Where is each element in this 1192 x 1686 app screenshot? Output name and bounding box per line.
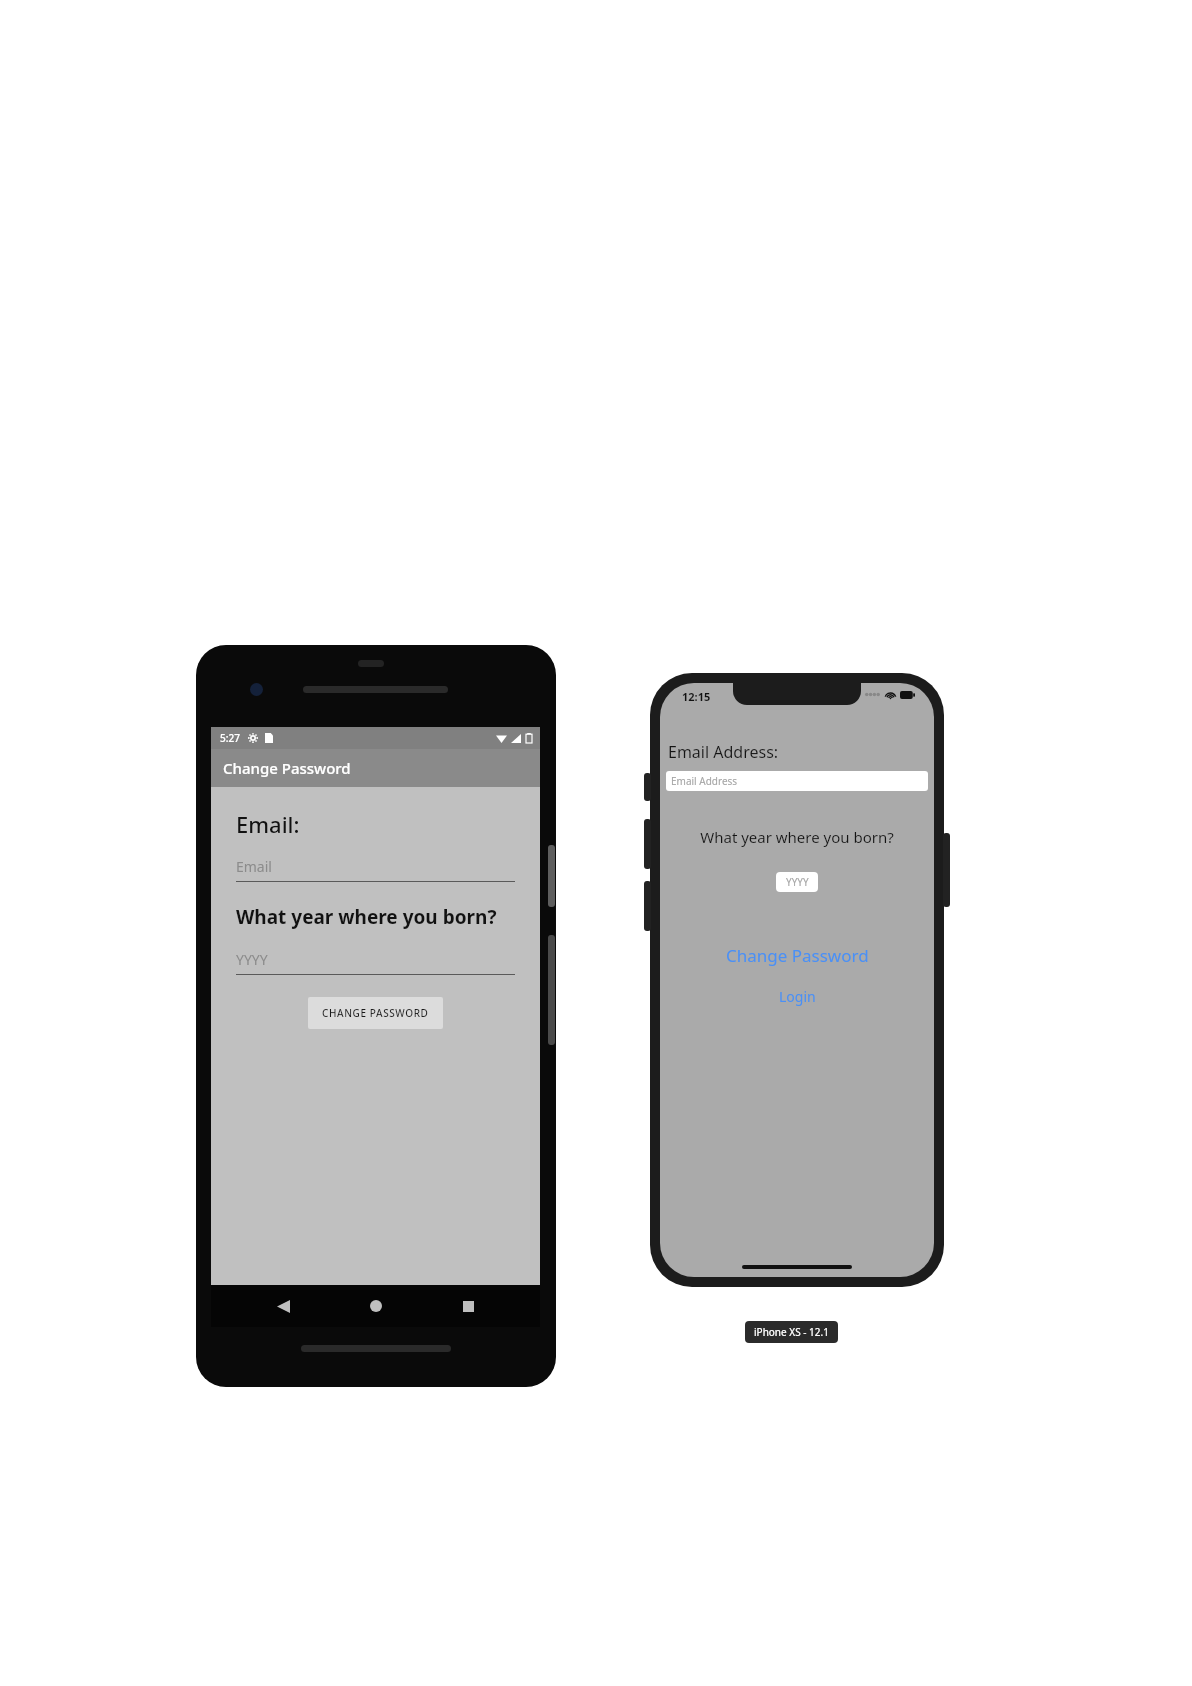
button[interactable]: Back (263, 1286, 303, 1326)
button[interactable]: Change Password (660, 944, 934, 967)
button[interactable]: Home (356, 1286, 396, 1326)
button[interactable]: YYYY (776, 872, 818, 892)
staticText: Login (779, 987, 816, 1006)
staticText: Change Password (223, 758, 351, 778)
staticText: Email Address: (668, 741, 779, 763)
staticText: Email (236, 857, 272, 876)
staticText: YYYY (236, 950, 268, 969)
button[interactable]: Login (660, 987, 934, 1006)
staticText: 5:27 (220, 731, 240, 745)
staticText: What year where you born? (236, 904, 497, 930)
staticText: CHANGE PASSWORD (322, 1006, 429, 1020)
button[interactable]: CHANGE PASSWORD (308, 997, 443, 1029)
staticText: Change Password (726, 944, 869, 967)
staticText: Email Address (671, 774, 738, 788)
staticText: YYYY (786, 875, 809, 889)
staticText: 12:15 (682, 689, 711, 704)
staticText: iPhone XS - 12.1 (754, 1325, 829, 1339)
button[interactable]: Email (236, 857, 515, 882)
button[interactable]: Email Address (666, 771, 928, 791)
staticText: What year where you born? (660, 827, 934, 847)
staticText: Email: (236, 809, 300, 839)
button[interactable]: Recents (448, 1286, 488, 1326)
button[interactable]: YYYY (236, 950, 515, 975)
